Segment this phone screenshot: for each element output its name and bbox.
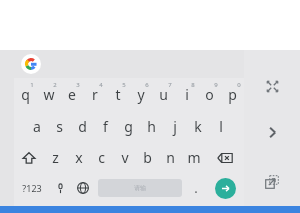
staticText: b xyxy=(143,148,152,167)
button[interactable]: Next xyxy=(258,118,286,146)
button[interactable]: t xyxy=(106,78,129,111)
staticText: 6 xyxy=(145,81,149,89)
staticText: x xyxy=(75,148,83,167)
staticText: g xyxy=(124,117,133,136)
button[interactable]: c xyxy=(90,142,113,173)
button[interactable]: Voice input xyxy=(50,173,71,203)
button[interactable]: b xyxy=(136,142,159,173)
staticText: s xyxy=(56,117,63,136)
staticText: c xyxy=(98,148,105,167)
button[interactable]: q xyxy=(14,78,37,111)
button[interactable]: Shift xyxy=(14,142,44,173)
button[interactable]: e xyxy=(60,78,83,111)
staticText: n xyxy=(166,148,175,167)
staticText: f xyxy=(103,117,108,136)
staticText: 1 xyxy=(30,81,34,89)
button[interactable]: d xyxy=(71,111,94,142)
staticText: 8 xyxy=(191,81,195,89)
staticText: m xyxy=(187,148,201,167)
staticText: 9 xyxy=(214,81,218,89)
staticText: j xyxy=(173,117,177,136)
button[interactable]: Open in new window xyxy=(258,168,286,196)
staticText: 5 xyxy=(122,81,126,89)
staticText: u xyxy=(159,85,168,104)
staticText: 4 xyxy=(99,81,103,89)
button[interactable]: Enter xyxy=(215,178,236,199)
staticText: v xyxy=(121,148,129,167)
button[interactable]: Backspace xyxy=(205,142,244,173)
button[interactable]: h xyxy=(140,111,163,142)
staticText: z xyxy=(52,148,59,167)
staticText: a xyxy=(33,117,41,136)
button[interactable]: 请输 xyxy=(98,179,182,197)
staticText: . xyxy=(194,179,198,197)
staticText: ?123 xyxy=(22,182,42,194)
staticText: e xyxy=(68,85,76,104)
button[interactable]: s xyxy=(48,111,71,142)
button[interactable]: w xyxy=(37,78,60,111)
staticText: h xyxy=(147,117,156,136)
button[interactable]: k xyxy=(186,111,209,142)
staticText: o xyxy=(205,85,214,104)
button[interactable]: m xyxy=(182,142,205,173)
staticText: q xyxy=(21,85,30,104)
button[interactable]: Expand xyxy=(258,72,286,100)
button[interactable]: ?123 xyxy=(14,173,50,203)
button[interactable]: f xyxy=(94,111,117,142)
button[interactable]: u xyxy=(152,78,175,111)
button[interactable]: v xyxy=(113,142,136,173)
button[interactable]: . xyxy=(185,173,206,203)
button[interactable]: a xyxy=(25,111,48,142)
staticText: d xyxy=(78,117,87,136)
button[interactable]: r xyxy=(83,78,106,111)
staticText: 请输 xyxy=(134,184,146,192)
button[interactable]: i xyxy=(175,78,198,111)
staticText: y xyxy=(137,85,145,104)
staticText: k xyxy=(194,117,202,136)
staticText: r xyxy=(92,85,98,104)
staticText: 2 xyxy=(53,81,57,89)
staticText: 0 xyxy=(237,81,241,89)
staticText: i xyxy=(185,85,189,104)
staticText: 3 xyxy=(76,81,80,89)
staticText: t xyxy=(115,85,121,104)
button[interactable]: Google xyxy=(21,54,41,74)
staticText: l xyxy=(219,117,223,136)
button[interactable]: Change language xyxy=(71,173,95,203)
button[interactable]: g xyxy=(117,111,140,142)
button[interactable]: y xyxy=(129,78,152,111)
button[interactable]: n xyxy=(159,142,182,173)
button[interactable]: o xyxy=(198,78,221,111)
staticText: w xyxy=(43,85,55,104)
button[interactable]: z xyxy=(44,142,67,173)
button[interactable]: j xyxy=(163,111,186,142)
button[interactable]: x xyxy=(67,142,90,173)
staticText: 7 xyxy=(168,81,172,89)
button[interactable]: l xyxy=(209,111,232,142)
button[interactable]: p xyxy=(221,78,244,111)
staticText: p xyxy=(228,85,237,104)
